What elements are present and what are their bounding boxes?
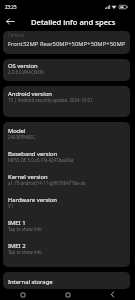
- staticText: Baseband version: [8, 150, 58, 158]
- staticText: a1.75-android14-11-g9f6706477de-ab: [8, 180, 86, 186]
- staticText: 15 | Android security update: 2024-10-01: [8, 97, 93, 103]
- button[interactable]: Model: [3, 122, 130, 145]
- button[interactable]: Recent apps: [0, 289, 45, 300]
- staticText: Internal storage: [8, 278, 53, 286]
- staticText: MPSS.DE.5.0.c6-CN-4297daa00a: [8, 157, 74, 163]
- staticText: IMEI 2: [8, 242, 26, 250]
- button[interactable]: IMEI 2: [3, 237, 130, 260]
- staticText: Hardware version: [8, 196, 58, 204]
- staticText: Tap to show info: [8, 226, 42, 232]
- button[interactable]: Baseband version: [3, 145, 130, 168]
- button[interactable]: Hardware version: [3, 191, 130, 214]
- staticText: IMEI 1: [8, 219, 26, 227]
- button[interactable]: Internal storage: [3, 272, 130, 289]
- staticText: Tap to show info: [8, 249, 42, 255]
- staticText: 23:25: [5, 4, 17, 10]
- button[interactable]: Camera: [3, 31, 130, 54]
- button[interactable]: Kernel version: [3, 168, 130, 191]
- button[interactable]: Back: [90, 289, 135, 300]
- staticText: OS version: [8, 62, 38, 70]
- staticText: 2403EPN6DC: [8, 134, 35, 140]
- staticText: V1: [8, 203, 14, 209]
- button[interactable]: OS version: [3, 59, 130, 81]
- staticText: Detailed info and specs: [31, 17, 116, 27]
- staticText: 2.0.6.0.VNACNXM: [8, 69, 44, 75]
- button[interactable]: IMEI 1: [3, 214, 130, 237]
- button[interactable]: Android version: [3, 86, 130, 117]
- staticText: Model: [8, 127, 26, 135]
- button[interactable]: Back: [0, 12, 20, 31]
- staticText: Android version: [8, 90, 52, 98]
- button[interactable]: Home: [45, 289, 90, 300]
- staticText: Kernel version: [8, 173, 48, 181]
- staticText: Front32MP Rear50MP+50MP+50MP+50MP: [8, 40, 126, 48]
- staticText: Camera: [8, 32, 25, 38]
